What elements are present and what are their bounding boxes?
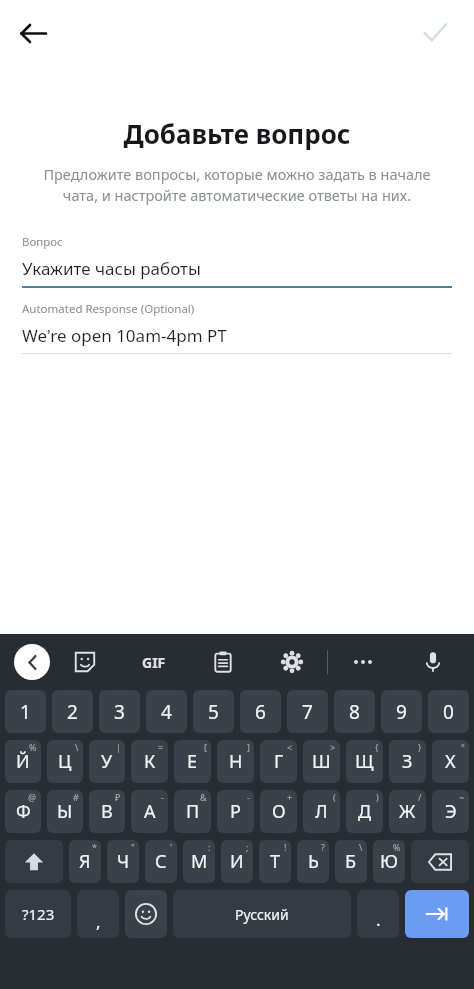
button[interactable]: Г bbox=[260, 740, 297, 783]
button[interactable]: Stickers bbox=[50, 634, 119, 690]
button[interactable]: Back bbox=[8, 8, 58, 58]
button[interactable]: 1 bbox=[5, 690, 46, 733]
staticText: Е bbox=[187, 749, 198, 774]
button[interactable]: 9 bbox=[381, 690, 422, 733]
button[interactable]: К bbox=[131, 740, 168, 783]
staticText: Г bbox=[274, 749, 284, 774]
staticText: < bbox=[287, 741, 293, 753]
staticText: % bbox=[393, 841, 401, 853]
staticText: В bbox=[101, 799, 113, 824]
staticText: 8 bbox=[349, 699, 360, 725]
button[interactable]: 6 bbox=[240, 690, 281, 733]
button[interactable]: Ш bbox=[303, 740, 340, 783]
button[interactable]: 8 bbox=[334, 690, 375, 733]
button[interactable]: Emoji bbox=[125, 890, 167, 938]
button[interactable]: Clipboard bbox=[188, 634, 257, 690]
button[interactable]: М bbox=[183, 840, 215, 883]
button[interactable]: Н bbox=[217, 740, 254, 783]
staticText: 2 bbox=[67, 699, 78, 725]
staticText: 3 bbox=[114, 699, 125, 725]
button[interactable]: Ц bbox=[47, 740, 83, 783]
staticText: > bbox=[330, 741, 336, 753]
staticText: . bbox=[376, 908, 381, 931]
staticText: Ч bbox=[117, 849, 130, 874]
button[interactable]: З bbox=[389, 740, 426, 783]
button[interactable]: GIF bbox=[119, 634, 188, 690]
staticText: А bbox=[144, 799, 156, 824]
button[interactable]: Settings bbox=[257, 634, 327, 690]
button[interactable]: More options bbox=[328, 634, 398, 690]
button[interactable]: Э bbox=[432, 790, 469, 833]
button[interactable]: Enter bbox=[405, 890, 469, 938]
button[interactable]: И bbox=[221, 840, 253, 883]
staticText: | bbox=[116, 741, 121, 753]
button[interactable]: . bbox=[357, 890, 399, 938]
button[interactable]: 7 bbox=[287, 690, 328, 733]
button[interactable]: 4 bbox=[146, 690, 187, 733]
button[interactable]: 3 bbox=[99, 690, 140, 733]
button[interactable]: Е bbox=[174, 740, 211, 783]
button[interactable]: Backspace bbox=[411, 840, 469, 883]
staticText: Ф bbox=[16, 799, 31, 824]
button[interactable]: Ь bbox=[297, 840, 329, 883]
button[interactable]: Ф bbox=[5, 790, 41, 833]
button[interactable]: , bbox=[77, 890, 119, 938]
button[interactable]: П bbox=[174, 790, 211, 833]
staticText: Ы bbox=[57, 799, 73, 824]
button[interactable]: Done bbox=[412, 10, 458, 56]
button[interactable]: Ч bbox=[107, 840, 139, 883]
button[interactable]: Collapse toolbar bbox=[14, 644, 50, 680]
button[interactable]: Л bbox=[303, 790, 340, 833]
button[interactable]: Ю bbox=[373, 840, 405, 883]
button[interactable]: В bbox=[89, 790, 125, 833]
staticText: 5 bbox=[208, 699, 219, 725]
button[interactable]: Т bbox=[259, 840, 291, 883]
staticText: We're open 10am-4pm PT bbox=[22, 324, 227, 347]
staticText: - bbox=[247, 791, 250, 803]
button[interactable]: 5 bbox=[193, 690, 234, 733]
button[interactable]: Щ bbox=[346, 740, 383, 783]
button[interactable]: О bbox=[260, 790, 297, 833]
button[interactable]: У bbox=[89, 740, 125, 783]
staticText: 7 bbox=[302, 699, 313, 725]
button[interactable]: Я bbox=[69, 840, 101, 883]
button[interactable]: Вопрос bbox=[22, 234, 452, 288]
staticText: Укажите часы работы bbox=[22, 257, 201, 280]
button[interactable]: Ы bbox=[47, 790, 83, 833]
staticText: З bbox=[402, 749, 413, 774]
button[interactable]: Русский bbox=[173, 890, 351, 938]
staticText: Й bbox=[16, 749, 30, 774]
staticText: О bbox=[272, 799, 286, 824]
button[interactable]: Р bbox=[217, 790, 254, 833]
staticText: Х bbox=[445, 749, 456, 774]
staticText: { bbox=[375, 741, 379, 753]
staticText: ! bbox=[284, 841, 287, 853]
button[interactable]: Automated Response (Optional) bbox=[22, 301, 452, 354]
staticText: Русский bbox=[235, 905, 289, 924]
button[interactable]: Voice input bbox=[398, 634, 468, 690]
staticText: 9 bbox=[396, 699, 407, 725]
staticText: 4 bbox=[161, 699, 172, 725]
staticText: Т bbox=[270, 849, 281, 874]
button[interactable]: 0 bbox=[428, 690, 469, 733]
staticText: GIF bbox=[142, 653, 166, 672]
button[interactable]: 2 bbox=[52, 690, 93, 733]
button[interactable]: Х bbox=[432, 740, 469, 783]
button[interactable]: Ж bbox=[389, 790, 426, 833]
staticText: Р bbox=[230, 799, 241, 824]
staticText: Я bbox=[79, 849, 91, 874]
staticText: Б bbox=[345, 849, 357, 874]
button[interactable]: С bbox=[145, 840, 177, 883]
button[interactable]: ?123 bbox=[5, 890, 71, 938]
button[interactable]: Shift bbox=[5, 840, 63, 883]
staticText: И bbox=[230, 849, 244, 874]
button[interactable]: Д bbox=[346, 790, 383, 833]
staticText: Добавьте вопрос bbox=[0, 116, 474, 151]
button[interactable]: Б bbox=[335, 840, 367, 883]
staticText: = bbox=[158, 741, 164, 753]
staticText: М bbox=[191, 849, 208, 874]
staticText: : bbox=[208, 841, 211, 853]
button[interactable]: Й bbox=[5, 740, 41, 783]
staticText: 1 bbox=[20, 699, 31, 725]
button[interactable]: А bbox=[131, 790, 168, 833]
